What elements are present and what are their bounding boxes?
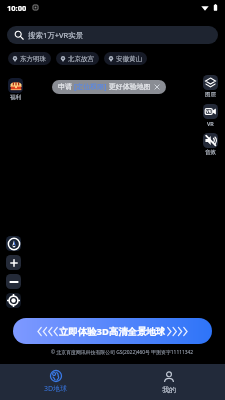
staticText: 10:00 xyxy=(7,3,27,13)
staticText: VR xyxy=(207,120,214,127)
staticText: 福利 xyxy=(10,94,21,101)
button[interactable]: Layers xyxy=(203,75,218,90)
staticText: © 北京百度网讯科技有限公司 GS(2022)460号 甲测资字11111342 xyxy=(51,349,194,356)
staticText: 立即体验3D高清全景地球 xyxy=(59,325,166,338)
button[interactable]: 安徽黄山 xyxy=(104,52,147,65)
staticText: 搜索1万+VR实景 xyxy=(28,30,84,40)
button[interactable]: Compass xyxy=(6,236,21,251)
button[interactable]: 福利 xyxy=(8,78,23,93)
button[interactable]: My location xyxy=(6,293,21,308)
button[interactable]: 申请 xyxy=(52,80,166,94)
button[interactable]: Zoom out xyxy=(6,274,21,289)
button[interactable]: Zoom in xyxy=(6,255,21,270)
staticText: 安徽黄山 xyxy=(116,55,142,63)
staticText: 图层 xyxy=(205,91,216,98)
staticText: 我的 xyxy=(162,385,176,394)
staticText: 更好体验地图 xyxy=(107,82,151,92)
staticText: 音效 xyxy=(205,149,216,156)
staticText: 东方明珠 xyxy=(20,55,46,63)
button[interactable]: 3D地球 xyxy=(0,370,112,394)
button[interactable]: VR xyxy=(203,104,218,119)
button[interactable]: 关闭 xyxy=(153,83,161,91)
staticText: 申请 xyxy=(58,82,74,92)
staticText: 北京故宫 xyxy=(68,55,94,63)
button[interactable]: 东方明珠 xyxy=(8,52,51,65)
button[interactable]: 立即体验3D高清全景地球 xyxy=(13,318,212,344)
staticText: 3D地球 xyxy=(44,384,68,394)
staticText: [定位权限] xyxy=(74,82,107,92)
button[interactable]: 北京故宫 xyxy=(56,52,99,65)
button[interactable]: 我的 xyxy=(112,371,225,394)
button[interactable]: 搜索1万+VR实景 xyxy=(7,26,218,44)
button[interactable]: Sound off xyxy=(203,133,218,148)
